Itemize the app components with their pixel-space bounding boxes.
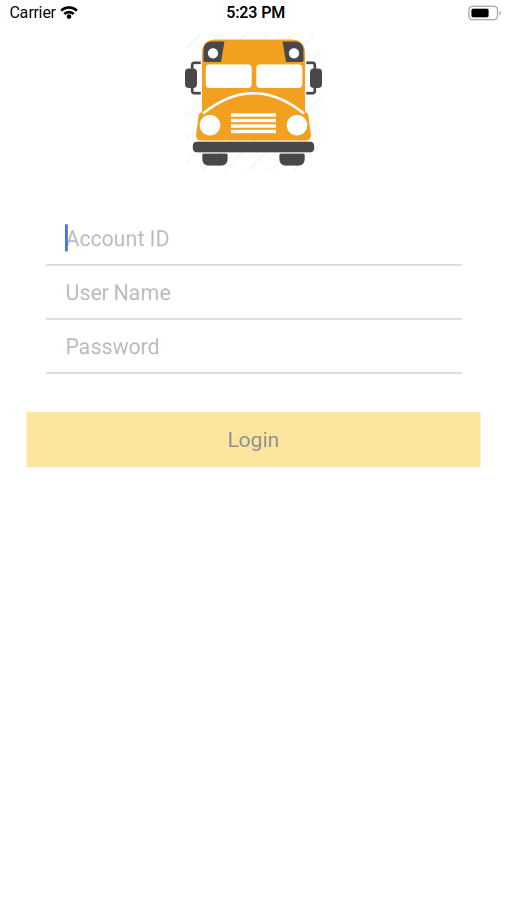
staticText: User Name [66, 280, 171, 305]
staticText: Password [66, 334, 160, 359]
button[interactable]: Password [46, 320, 462, 374]
staticText: 5:23 PM [226, 3, 285, 22]
button[interactable]: Login [26, 412, 480, 467]
button[interactable]: User Name [46, 266, 462, 320]
staticText: Login [227, 427, 279, 452]
staticText: Account ID [66, 226, 170, 251]
staticText: Carrier [9, 3, 55, 22]
button[interactable]: Account ID [46, 212, 462, 266]
